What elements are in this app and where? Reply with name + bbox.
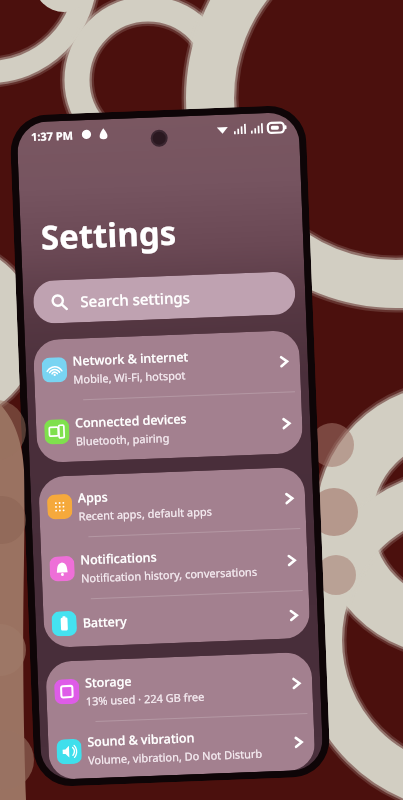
staticText: Sound & vibration [87, 729, 196, 750]
staticText: 13% used · 224 GB free [85, 689, 205, 708]
staticText: Apps [78, 488, 108, 506]
staticText: 1:37 PM [31, 127, 74, 144]
staticText: Connected devices [75, 410, 187, 432]
button[interactable]: Storage [45, 652, 313, 723]
staticText: Volume, vibration, Do Not Disturb [88, 746, 263, 767]
staticText: Notifications [80, 549, 158, 568]
button[interactable]: Network & internet [33, 330, 301, 401]
staticText: Network & internet [72, 348, 189, 370]
staticText: Settings [40, 210, 178, 260]
button[interactable]: Battery [43, 591, 310, 648]
staticText: Storage [85, 673, 132, 691]
button[interactable]: Apps [38, 467, 306, 538]
button[interactable]: Notifications [40, 529, 309, 600]
button[interactable]: Connected devices [35, 392, 303, 463]
button[interactable]: Search settings [33, 271, 296, 324]
staticText: Search settings [80, 287, 191, 311]
staticText: Notification history, conversations [81, 564, 258, 585]
staticText: Recent apps, default apps [78, 503, 213, 523]
button[interactable]: Sound & vibration [48, 714, 316, 780]
staticText: Battery [82, 613, 127, 631]
staticText: Mobile, Wi-Fi, hotspot [73, 367, 187, 387]
staticText: Bluetooth, pairing [75, 430, 170, 449]
